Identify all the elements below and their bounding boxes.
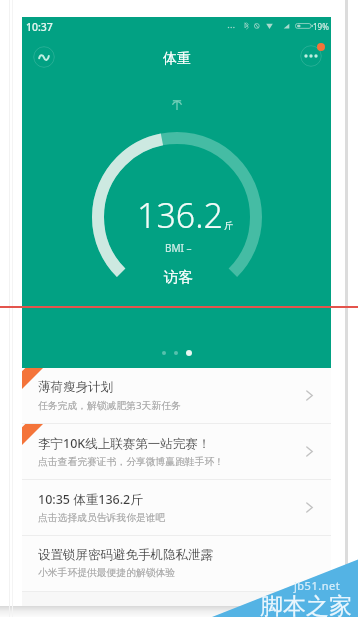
- button[interactable]: 10:35 体重136.2斤: [22, 480, 331, 535]
- staticText: BMI –: [165, 241, 192, 255]
- staticText: 任务完成，解锁减肥第3天新任务: [38, 399, 181, 412]
- button[interactable]: Heart rate: [33, 46, 55, 68]
- staticText: 薄荷瘦身计划: [38, 379, 113, 395]
- staticText: 体重: [163, 50, 191, 68]
- staticText: 10:35 体重136.2斤: [38, 491, 143, 508]
- staticText: 19%: [313, 21, 329, 32]
- staticText: 10:37: [26, 20, 53, 34]
- staticText: 斤: [224, 220, 233, 231]
- staticText: jb51.net: [294, 578, 341, 593]
- staticText: 点击选择成员告诉我你是谁吧: [38, 512, 166, 524]
- staticText: 李宁10K线上联赛第一站完赛！: [38, 435, 211, 452]
- staticText: 设置锁屏密码避免手机隐私泄露: [38, 547, 213, 563]
- button[interactable]: 李宁10K线上联赛第一站完赛！: [22, 424, 331, 479]
- staticText: 脚本之家: [260, 592, 352, 617]
- staticText: 点击查看完赛证书，分享微博赢跑鞋手环！: [38, 456, 225, 468]
- button[interactable]: More options: [300, 45, 322, 67]
- staticText: 136.2: [137, 192, 223, 238]
- staticText: 访客: [164, 268, 193, 286]
- staticText: 小米手环提供最便捷的解锁体验: [38, 567, 176, 579]
- button[interactable]: 设置锁屏密码避免手机隐私泄露: [22, 536, 331, 591]
- button[interactable]: 薄荷瘦身计划: [22, 368, 331, 423]
